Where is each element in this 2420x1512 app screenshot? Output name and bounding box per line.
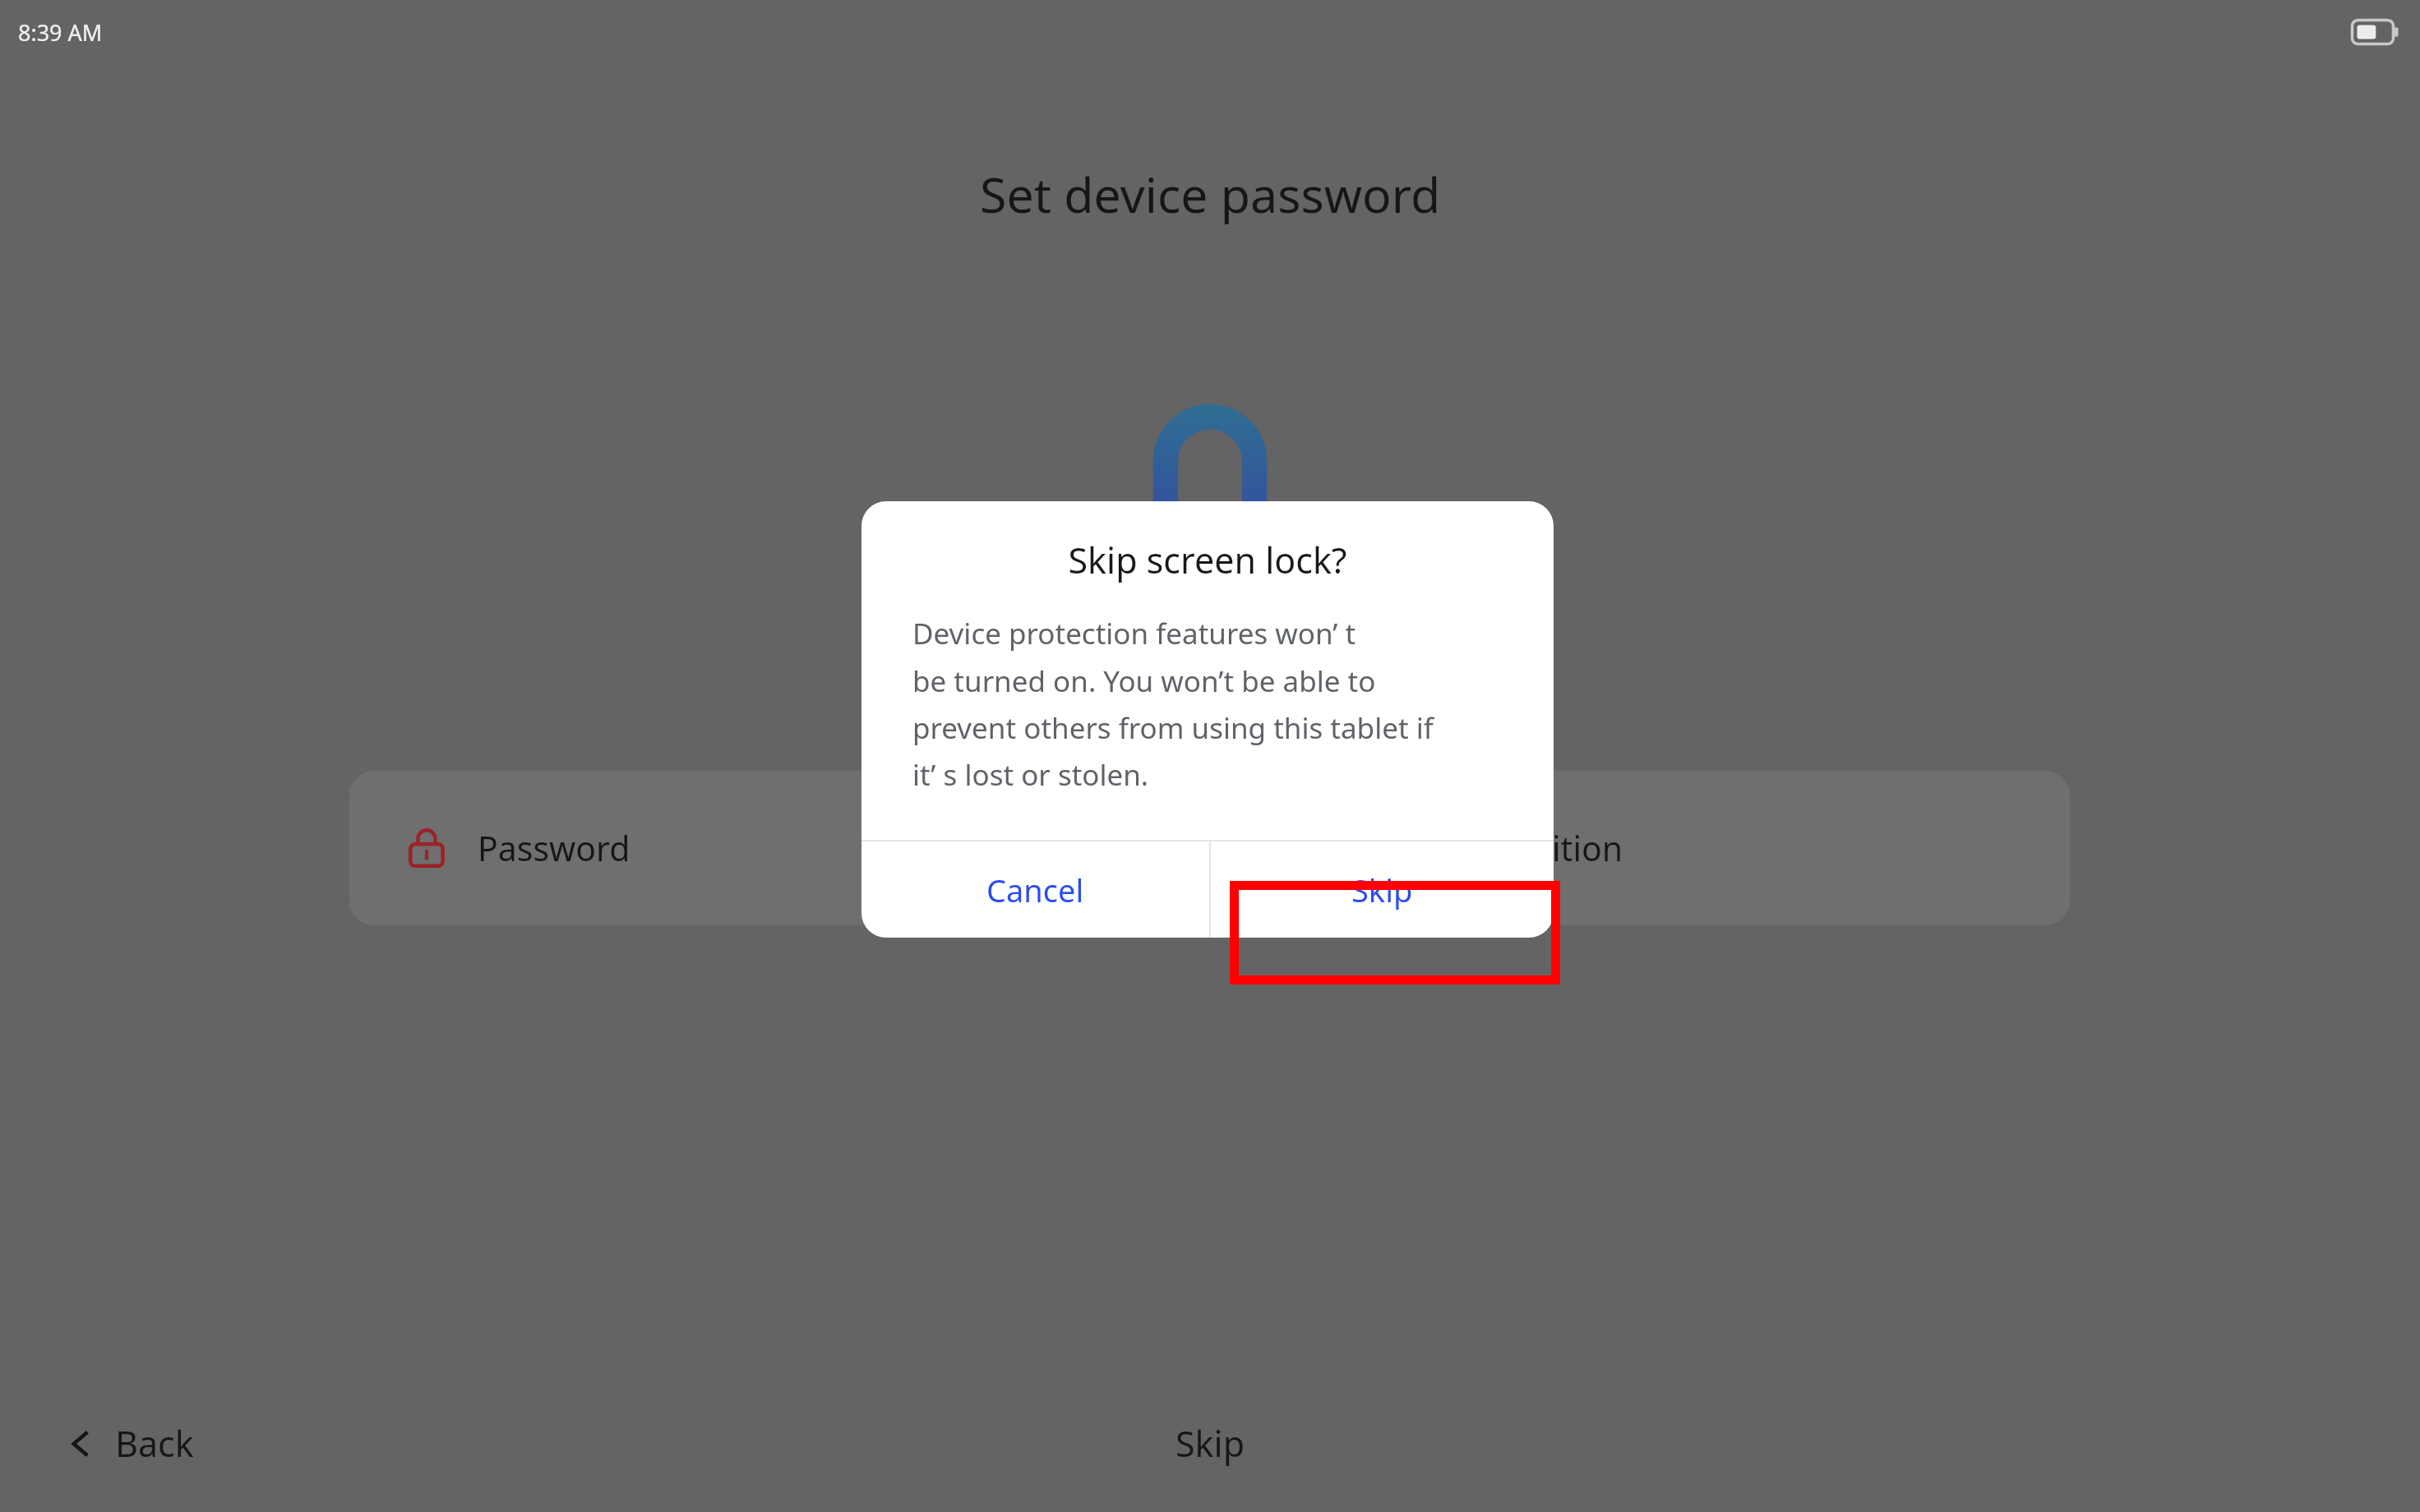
staticText: Set device password [980,161,1441,227]
staticText: Skip [1175,1419,1245,1468]
staticText: Skip [1351,869,1413,911]
button[interactable]: Skip [1211,841,1554,938]
button[interactable]: Skip [1146,1403,1275,1484]
button[interactable]: Back [48,1403,215,1484]
staticText: Face recognition [1361,825,1623,871]
other: Battery [2351,19,2399,45]
button[interactable]: Password [349,771,1188,925]
staticText: Skip screen lock? [1068,536,1347,584]
staticText: Password [478,825,630,871]
staticText: Cancel [986,869,1084,911]
button[interactable]: Cancel [861,841,1209,938]
button[interactable]: Face recognition [1231,771,2070,925]
staticText: Back [115,1419,194,1468]
staticText: Device protection features won’ t be tur… [912,614,1434,794]
staticText: 8:39 AM [18,17,103,48]
